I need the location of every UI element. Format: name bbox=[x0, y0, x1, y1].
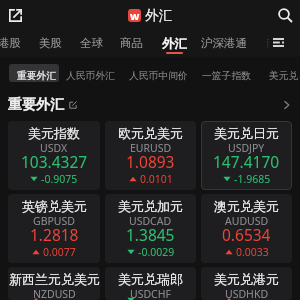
staticText: 港股 bbox=[0, 36, 21, 50]
staticText: AUDUSD bbox=[225, 214, 269, 228]
button[interactable]: 港股 bbox=[0, 36, 21, 50]
staticText: W bbox=[130, 10, 140, 22]
staticText: 1.0893 bbox=[126, 151, 175, 172]
staticText: 欧元兑美元 bbox=[118, 125, 183, 141]
staticText: 外汇 bbox=[162, 36, 187, 52]
button[interactable]: 外汇 bbox=[162, 36, 187, 54]
button[interactable]: 澳元兑美元 bbox=[201, 194, 292, 263]
staticText: USDHKD bbox=[225, 287, 269, 300]
staticText: 103.4327 bbox=[21, 151, 88, 172]
staticText: 商品 bbox=[120, 36, 143, 50]
staticText: 0.0033 bbox=[236, 245, 269, 259]
staticText: 147.4170 bbox=[213, 151, 280, 172]
staticText: 美元兑港元 bbox=[214, 271, 279, 287]
staticText: USDCAD bbox=[129, 214, 172, 228]
staticText: 沪深港通 bbox=[201, 36, 247, 50]
staticText: -0.0029 bbox=[138, 245, 175, 259]
button[interactable]: 新西兰元兑美元 bbox=[8, 267, 100, 300]
button[interactable]: 欧元兑美元 bbox=[105, 121, 196, 190]
staticText: -0.9075 bbox=[41, 172, 78, 186]
staticText: 美元兑日元 bbox=[214, 125, 279, 141]
staticText: 重要外汇 bbox=[8, 96, 64, 114]
button[interactable]: 人民币中间价 bbox=[129, 64, 188, 88]
staticText: 1.2818 bbox=[30, 224, 79, 245]
button[interactable]: 美元兑 bbox=[269, 64, 299, 88]
staticText: EURUSD bbox=[130, 141, 172, 155]
staticText: 全球 bbox=[80, 36, 103, 50]
staticText: 1.3845 bbox=[126, 224, 175, 245]
staticText: 0.0101 bbox=[140, 172, 173, 186]
button[interactable]: 美元兑瑞郎 bbox=[105, 267, 196, 300]
button[interactable]: 美元兑加元 bbox=[105, 194, 196, 263]
button[interactable]: Search bbox=[273, 3, 297, 27]
button[interactable]: 全球 bbox=[80, 36, 103, 50]
staticText: 外汇 bbox=[145, 7, 172, 24]
button[interactable]: 英镑兑美元 bbox=[8, 194, 100, 263]
staticText: 重要外汇 bbox=[17, 70, 57, 82]
button[interactable]: All categories bbox=[266, 37, 284, 48]
staticText: 英镑兑美元 bbox=[22, 198, 87, 214]
staticText: GBPUSD bbox=[33, 214, 75, 228]
staticText: 美股 bbox=[39, 36, 62, 50]
staticText: 0.0077 bbox=[43, 245, 76, 259]
staticText: USDX bbox=[40, 141, 68, 155]
button[interactable]: 重要外汇 bbox=[9, 64, 65, 88]
button[interactable]: 沪深港通 bbox=[201, 36, 247, 50]
staticText: 美元兑 bbox=[269, 70, 299, 82]
staticText: NZDUSD bbox=[33, 287, 76, 300]
staticText: 澳元兑美元 bbox=[214, 198, 279, 214]
staticText: USDJPY bbox=[228, 141, 265, 155]
staticText: 人民币中间价 bbox=[129, 70, 188, 82]
staticText: USDCHF bbox=[130, 287, 171, 300]
button[interactable]: 重要外汇 bbox=[0, 89, 300, 121]
button[interactable]: 美股 bbox=[39, 36, 62, 50]
staticText: 新西兰元兑美元 bbox=[9, 271, 100, 287]
staticText: 0.6534 bbox=[222, 224, 271, 245]
staticText: 美元兑加元 bbox=[118, 198, 183, 214]
staticText: 一篮子指数 bbox=[202, 70, 251, 82]
staticText: 美元兑瑞郎 bbox=[118, 271, 183, 287]
button[interactable]: 一篮子指数 bbox=[202, 64, 251, 88]
staticText: 美元指数 bbox=[28, 125, 80, 141]
button[interactable]: 商品 bbox=[120, 36, 143, 50]
button[interactable]: 美元兑港元 bbox=[201, 267, 292, 300]
staticText: -1.9685 bbox=[234, 172, 271, 186]
button[interactable]: 美元指数 bbox=[8, 121, 100, 190]
button[interactable]: Open in new window bbox=[3, 3, 27, 27]
staticText: 人民币外汇 bbox=[66, 70, 115, 82]
button[interactable]: 美元兑日元 bbox=[201, 121, 292, 190]
button[interactable]: 人民币外汇 bbox=[66, 64, 115, 88]
